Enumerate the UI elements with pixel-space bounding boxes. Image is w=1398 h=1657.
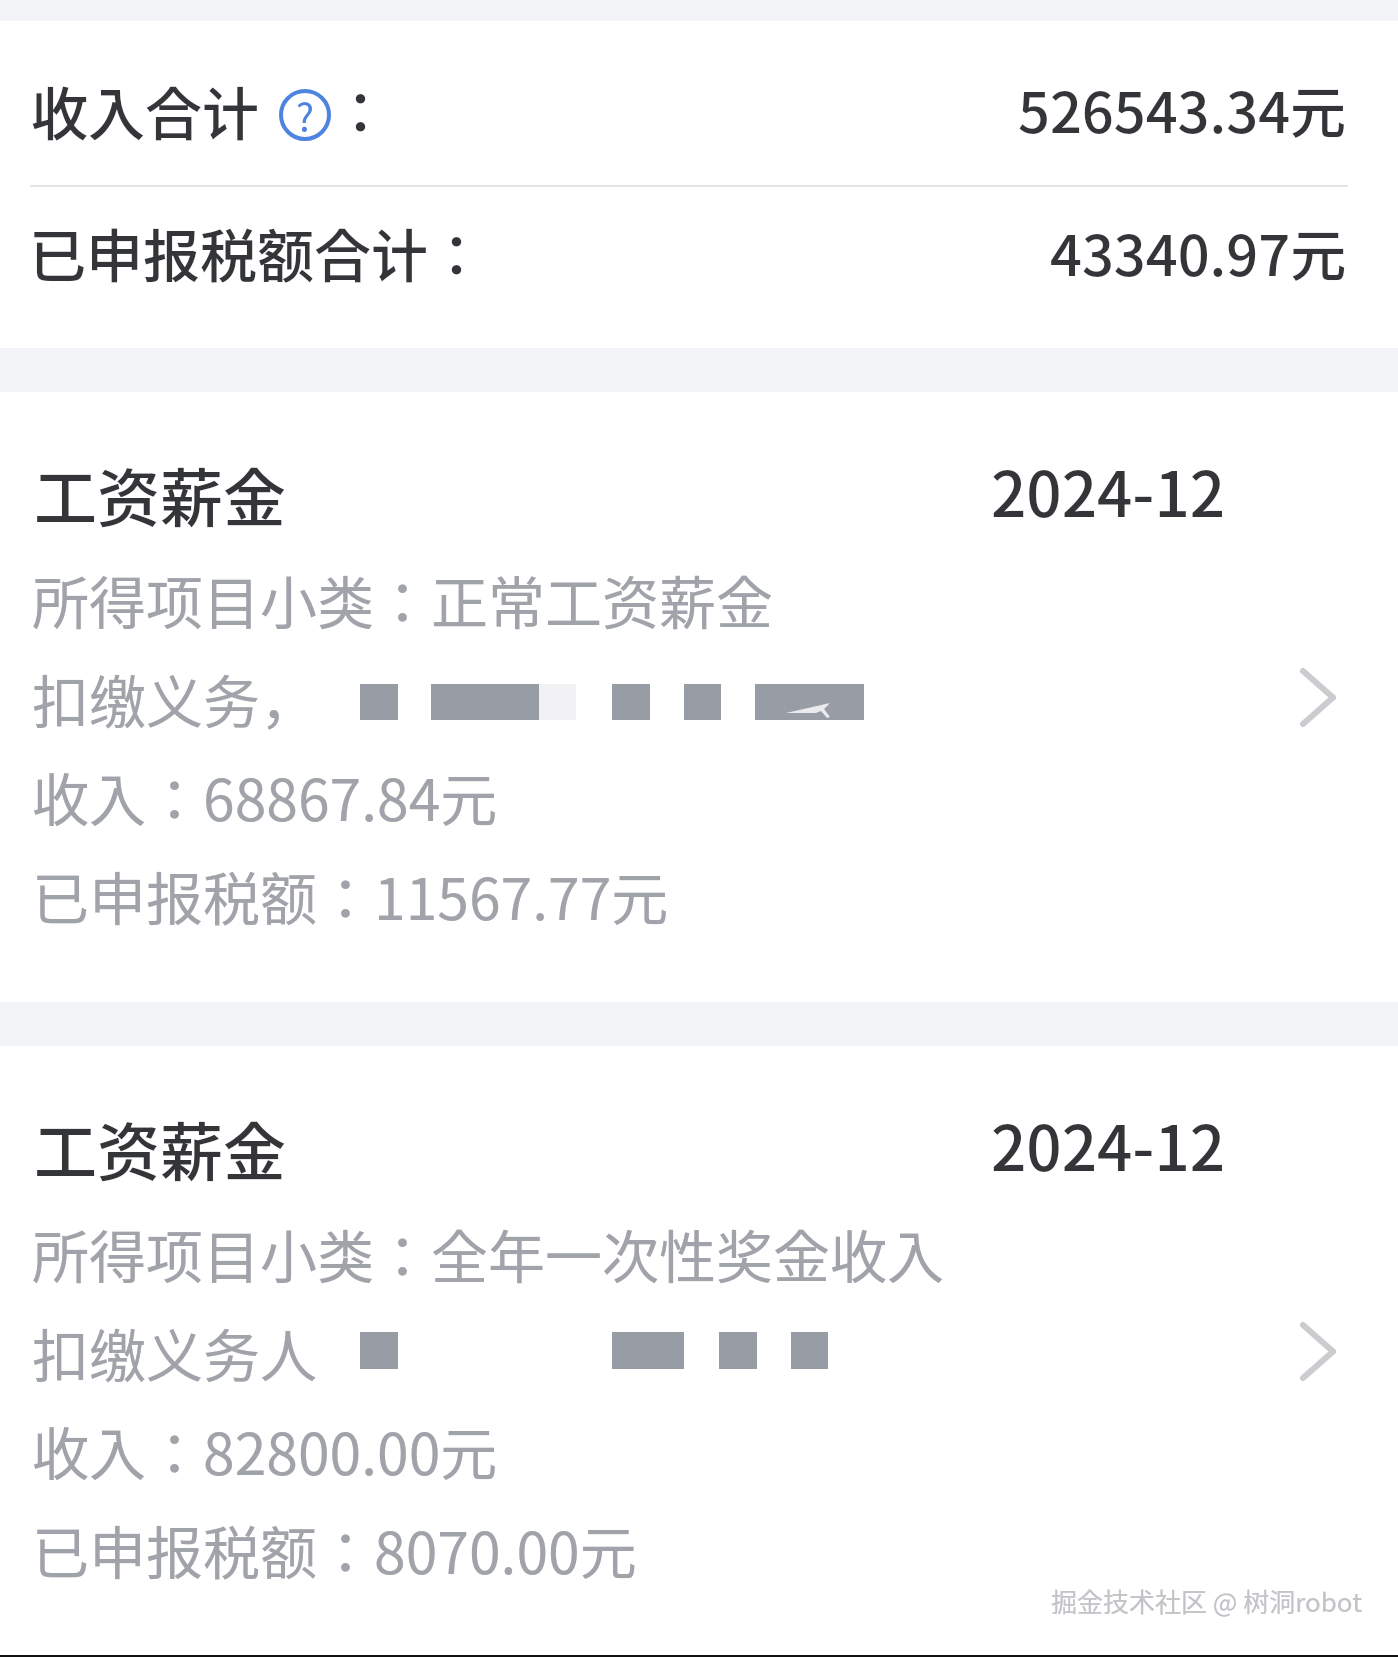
staticText: 工资薪金 (34, 448, 286, 539)
staticText: 已申报税额：8070.00元 (32, 1508, 637, 1591)
button[interactable]: 收入合计说明 Help (279, 89, 331, 141)
staticText: ? (296, 88, 315, 140)
staticText: 掘金技术社区 @ 树洞robot (1051, 1582, 1362, 1620)
button[interactable]: 收入合计 (0, 21, 1398, 185)
staticText: ： (332, 68, 389, 151)
staticText: 已申报税额：11567.77元 (32, 854, 669, 937)
staticText: 526543.34元 (1018, 68, 1347, 149)
staticText: 43340.97元 (1050, 211, 1347, 292)
staticText: 收入合计 (31, 69, 259, 152)
staticText: 所得项目小类：正常工资薪金 (32, 558, 773, 641)
staticText: 2024-12 (991, 445, 1226, 535)
staticText: 扣缴义务， (32, 657, 317, 740)
staticText: 已申报税额合计： (29, 211, 485, 294)
staticText: 所得项目小类：全年一次性奖金收入 (32, 1212, 944, 1295)
staticText: 收入：68867.84元 (32, 755, 498, 838)
button[interactable]: 查看明细 Open detail (1278, 1299, 1358, 1404)
staticText: 收入：82800.00元 (32, 1409, 498, 1492)
button[interactable]: 工资薪金 (0, 392, 1398, 1002)
button[interactable]: 已申报税额合计： (0, 187, 1398, 348)
staticText: 扣缴义务人 (32, 1311, 317, 1394)
staticText: 2024-12 (991, 1099, 1226, 1189)
button[interactable]: 查看明细 Open detail (1278, 645, 1358, 750)
button[interactable]: 工资薪金 (0, 1046, 1398, 1656)
staticText: 工资薪金 (34, 1102, 286, 1193)
